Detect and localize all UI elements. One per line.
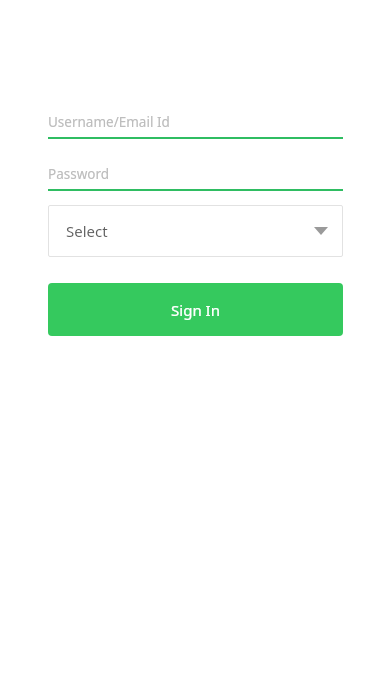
staticText: Username/Email Id	[48, 113, 170, 131]
button[interactable]: Sign In	[48, 283, 343, 336]
button[interactable]: Password	[48, 165, 343, 191]
button[interactable]: Select	[48, 205, 343, 257]
button[interactable]: Username/Email Id	[48, 113, 343, 139]
other: Open dropdown	[314, 227, 328, 235]
staticText: Select	[66, 221, 108, 241]
staticText: Sign In	[171, 300, 220, 320]
staticText: Password	[48, 165, 110, 183]
